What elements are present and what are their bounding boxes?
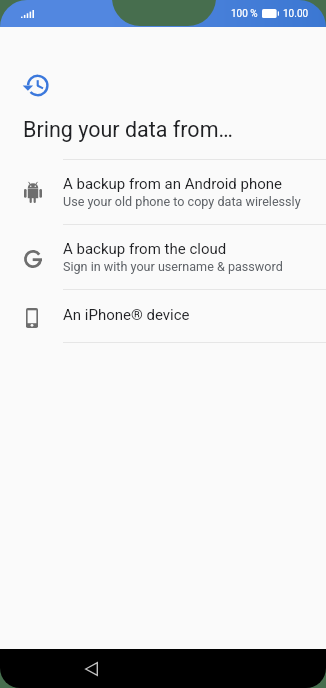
staticText: 100 % xyxy=(231,8,258,20)
button[interactable]: A backup from an Android phone xyxy=(0,160,326,224)
other: Restore xyxy=(22,71,51,100)
staticText: A backup from an Android phone xyxy=(63,175,316,193)
staticText: 10.00 xyxy=(283,8,309,20)
staticText: Bring your data from… xyxy=(23,117,233,142)
staticText: A backup from the cloud xyxy=(63,240,316,258)
button[interactable]: An iPhone® device xyxy=(0,290,326,342)
staticText: An iPhone® device xyxy=(63,306,316,324)
button[interactable]: A backup from the cloud xyxy=(0,225,326,289)
button[interactable]: Back xyxy=(56,649,126,688)
staticText: Use your old phone to copy data wireless… xyxy=(63,194,316,209)
staticText: Sign in with your username & password xyxy=(63,259,316,274)
